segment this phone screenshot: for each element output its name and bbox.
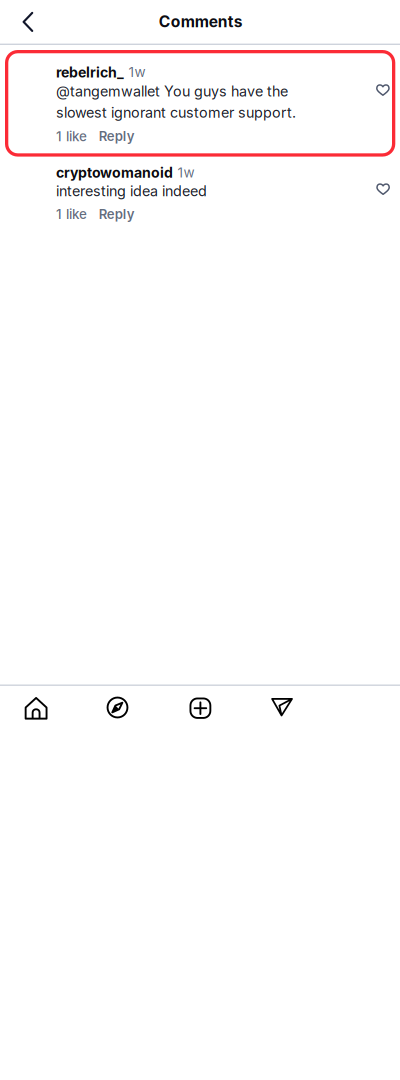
staticText: Comments xyxy=(159,12,243,31)
button[interactable]: Create xyxy=(160,686,240,731)
staticText: 1w xyxy=(128,64,145,80)
staticText: 1 like xyxy=(56,206,87,222)
staticText: interesting idea indeed xyxy=(56,182,207,200)
button[interactable]: Messages xyxy=(242,686,322,731)
staticText: rebelrich_ xyxy=(56,64,124,81)
button[interactable]: Like cryptowomanoid's comment xyxy=(369,176,397,202)
button[interactable]: Home xyxy=(0,686,76,731)
staticText: 1 like xyxy=(56,128,87,144)
staticText: 1w xyxy=(177,164,194,181)
button[interactable]: Like rebelrich_'s comment xyxy=(369,77,397,103)
staticText: @tangemwallet You guys have the slowest … xyxy=(56,83,296,121)
staticText: Reply xyxy=(99,206,135,222)
staticText: Reply xyxy=(99,128,135,144)
button[interactable]: rebelrich_ xyxy=(0,50,366,157)
button[interactable]: Back xyxy=(0,0,50,44)
button[interactable]: Search xyxy=(77,686,157,731)
button[interactable]: cryptowomanoid xyxy=(0,157,366,229)
staticText: cryptowomanoid xyxy=(56,164,173,181)
